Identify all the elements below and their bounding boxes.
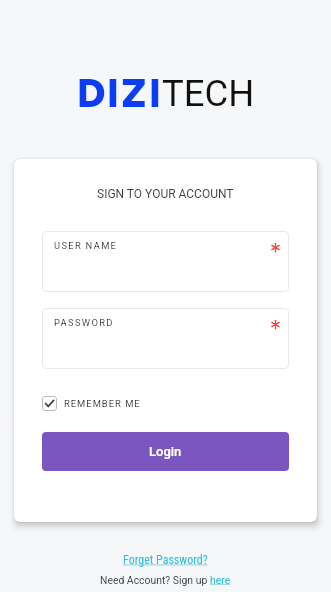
button[interactable]: REMEMBER ME [42, 396, 289, 411]
button[interactable]: here [210, 574, 231, 586]
button[interactable]: USER NAME [42, 231, 289, 292]
button[interactable]: PASSWORD [42, 308, 289, 369]
staticText: PASSWORD [54, 317, 114, 328]
staticText: DIZI [76, 68, 162, 117]
staticText: USER NAME [54, 240, 118, 251]
staticText: REMEMBER ME [64, 398, 141, 409]
button[interactable]: Forget Password? [123, 553, 208, 567]
button[interactable]: Login [42, 432, 289, 471]
staticText: Forget Password? [123, 553, 208, 567]
staticText: Need Account? Sign up [100, 574, 210, 586]
staticText: here [210, 574, 231, 586]
staticText: SIGN TO YOUR ACCOUNT [97, 187, 234, 201]
staticText: TECH [162, 72, 255, 115]
staticText: Login [149, 444, 182, 459]
